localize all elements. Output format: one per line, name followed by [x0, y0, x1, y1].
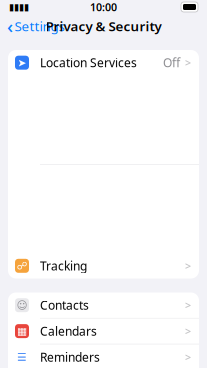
staticText: Reminders	[40, 349, 100, 365]
staticText: ‹	[7, 14, 13, 38]
staticText: Calendars	[40, 323, 97, 339]
staticText: Settings	[14, 17, 64, 35]
button[interactable]: ☺	[8, 292, 199, 318]
button[interactable]: ☰	[8, 344, 199, 368]
button[interactable]: ▦	[8, 318, 199, 344]
staticText: >	[185, 350, 191, 364]
button[interactable]: ☍	[8, 253, 199, 278]
staticText: >	[185, 324, 191, 338]
staticText: ➤	[17, 57, 26, 69]
button[interactable]: ‹	[0, 10, 71, 42]
staticText: ☍	[16, 260, 27, 272]
staticText: Location Services	[40, 55, 137, 71]
staticText: Privacy & Security	[45, 17, 161, 35]
staticText: 10:00	[90, 0, 117, 14]
staticText: ☰	[17, 351, 27, 363]
staticText: >	[185, 259, 191, 273]
staticText: >	[185, 56, 191, 70]
staticText: Off	[163, 55, 180, 71]
staticText: Contacts	[40, 297, 89, 313]
staticText: >	[185, 298, 191, 312]
staticText: ▦	[17, 325, 27, 337]
staticText: Tracking	[40, 258, 87, 274]
staticText: ▮▮▮▮	[9, 2, 29, 12]
button[interactable]: ➤	[8, 50, 199, 253]
staticText: ☺	[16, 299, 27, 311]
